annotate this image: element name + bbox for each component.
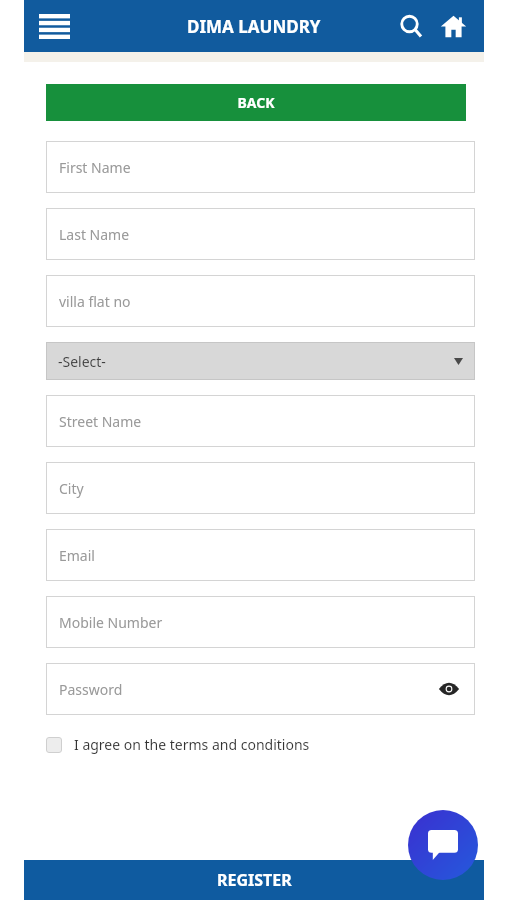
staticText: First Name: [59, 158, 131, 177]
staticText: REGISTER: [217, 869, 292, 891]
staticText: DIMA LAUNDRY: [187, 15, 321, 38]
button[interactable]: Menu: [33, 5, 75, 47]
button[interactable]: Last Name: [46, 208, 475, 260]
button[interactable]: Home: [434, 7, 472, 45]
staticText: Email: [59, 546, 95, 565]
button[interactable]: City: [46, 462, 475, 514]
button[interactable]: I agree on the terms and conditions: [46, 735, 310, 754]
button[interactable]: First Name: [46, 141, 475, 193]
staticText: I agree on the terms and conditions: [74, 735, 310, 754]
button[interactable]: REGISTER: [24, 860, 484, 900]
staticText: Street Name: [59, 412, 142, 431]
button[interactable]: Search: [392, 7, 430, 45]
button[interactable]: Show password: [436, 676, 462, 702]
button[interactable]: BACK: [46, 84, 466, 121]
staticText: -Select-: [58, 352, 106, 371]
button[interactable]: Mobile Number: [46, 596, 475, 648]
button[interactable]: Street Name: [46, 395, 475, 447]
staticText: Last Name: [59, 225, 130, 244]
button[interactable]: Email: [46, 529, 475, 581]
button[interactable]: Chat: [408, 810, 478, 880]
staticText: Mobile Number: [59, 613, 163, 632]
staticText: villa flat no: [59, 292, 131, 311]
staticText: Password: [59, 680, 123, 699]
button[interactable]: villa flat no: [46, 275, 475, 327]
button[interactable]: -Select-: [46, 342, 475, 380]
staticText: City: [59, 479, 84, 498]
staticText: BACK: [237, 93, 275, 112]
button[interactable]: Password: [46, 663, 475, 715]
